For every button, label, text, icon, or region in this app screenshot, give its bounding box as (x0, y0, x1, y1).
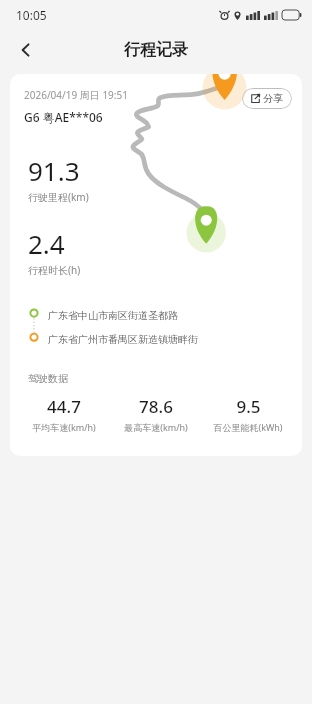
staticText: 行驶里程(km) (28, 190, 89, 204)
staticText: 44.7 (47, 395, 81, 418)
staticText: 广东省中山市南区街道圣都路 (48, 309, 178, 322)
staticText: 91.3 (28, 153, 80, 188)
staticText: 9.5 (236, 395, 261, 418)
button[interactable]: 分享 (242, 88, 292, 109)
staticText: G6 粤AE***06 (24, 109, 103, 125)
staticText: 行程记录 (124, 40, 188, 60)
staticText: 最高车速(km/h) (124, 421, 188, 433)
staticText: 分享 (263, 92, 283, 105)
staticText: 行程时长(h) (28, 263, 81, 277)
button[interactable]: Back (8, 32, 44, 68)
staticText: 广东省广州市番禺区新造镇塘畔街 (48, 333, 198, 346)
staticText: 78.6 (139, 395, 173, 418)
staticText: 2026/04/19 周日 19:51 (24, 88, 128, 102)
staticText: 平均车速(km/h) (32, 421, 96, 433)
staticText: 驾驶数据 (28, 372, 68, 385)
staticText: 百公里能耗(kWh) (213, 421, 283, 433)
staticText: 10:05 (16, 7, 47, 23)
staticText: 2.4 (28, 226, 65, 261)
